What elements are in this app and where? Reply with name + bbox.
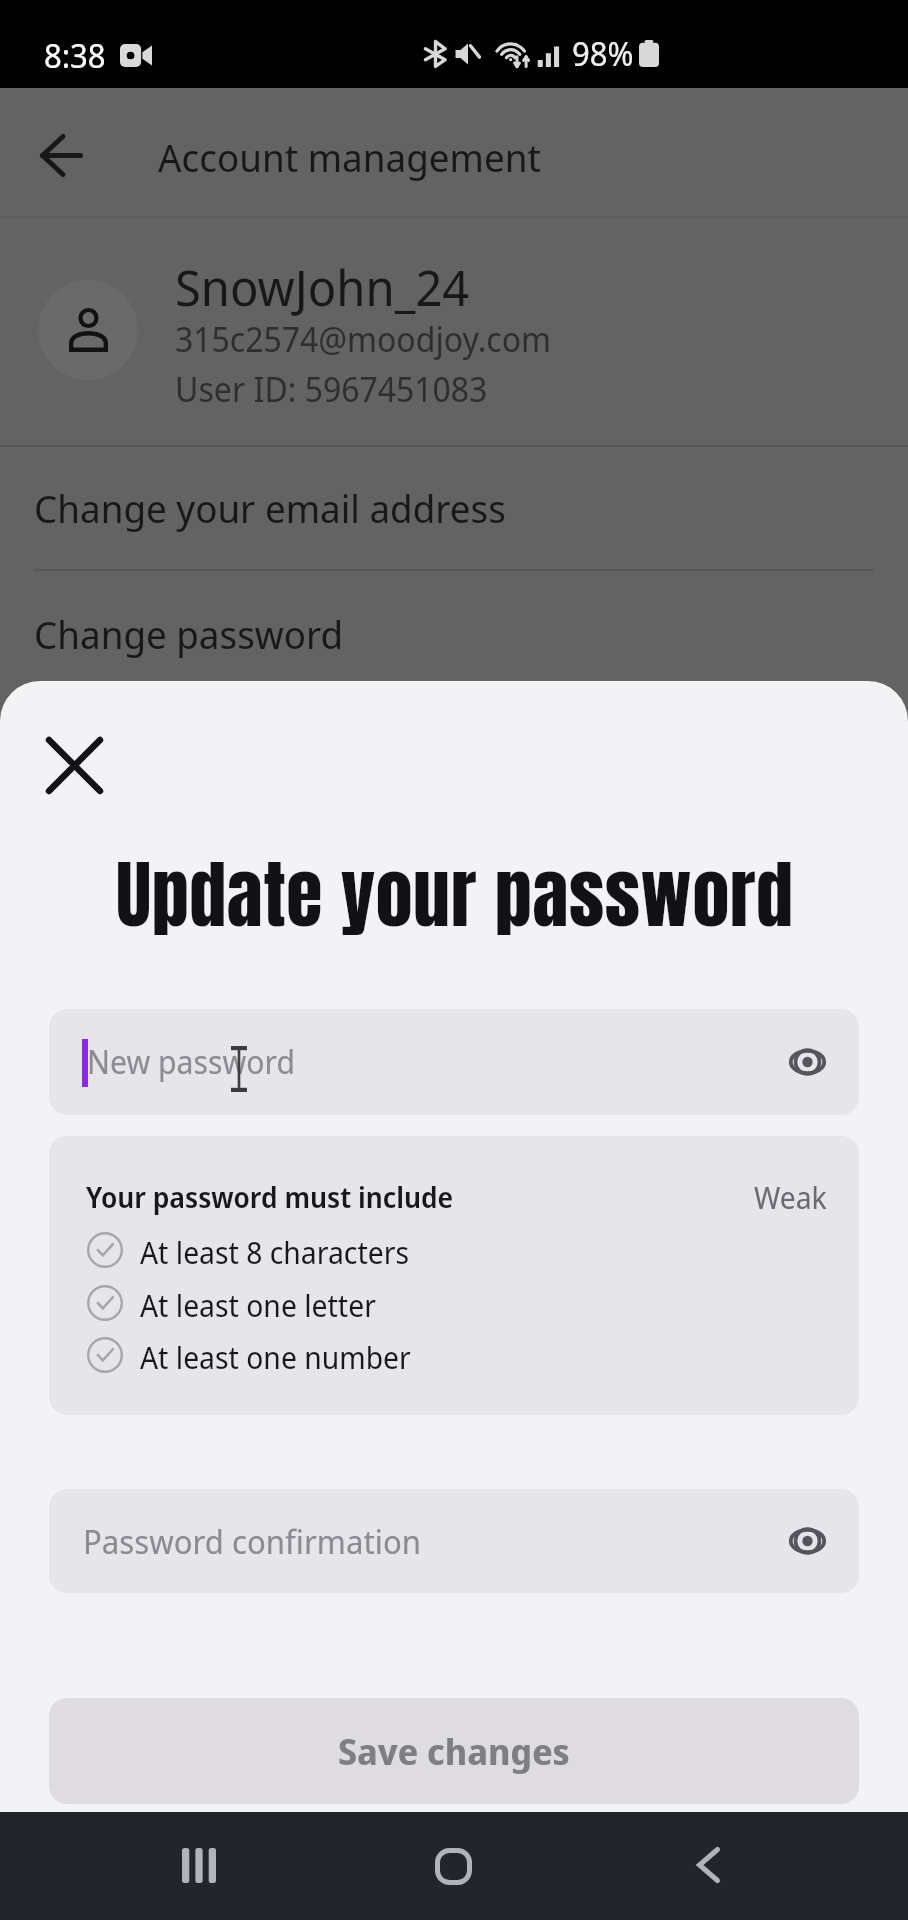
staticText: New password (87, 1040, 295, 1084)
staticText: 98% (572, 31, 634, 76)
staticText: At least one number (140, 1337, 411, 1373)
staticText: 315c2574@moodjoy.com (175, 316, 552, 362)
staticText: Update your password (116, 839, 794, 950)
staticText: At least 8 characters (140, 1232, 410, 1268)
staticText: Change your email address (34, 481, 506, 534)
staticText: Save changes (338, 1727, 570, 1776)
staticText: Weak (754, 1177, 827, 1218)
staticText: Account management (158, 130, 541, 183)
button[interactable]: Recent apps (151, 1817, 247, 1913)
staticText: Your password must include (86, 1178, 454, 1216)
button[interactable]: Password confirmation (49, 1489, 859, 1593)
button[interactable]: Back (29, 123, 93, 187)
staticText: At least one letter (140, 1285, 376, 1321)
staticText: Change password (34, 607, 344, 660)
staticText: 8:38 (44, 33, 106, 78)
button[interactable]: Change password (0, 571, 908, 695)
button[interactable]: Change your email address (0, 445, 908, 569)
button[interactable]: New password (49, 1009, 859, 1115)
button[interactable]: Show password (780, 1035, 834, 1089)
button[interactable]: Save changes (49, 1698, 859, 1804)
button[interactable]: Close (34, 725, 114, 805)
button[interactable]: Show password (780, 1514, 834, 1568)
staticText: Password confirmation (83, 1519, 422, 1564)
button[interactable]: Back (660, 1817, 756, 1913)
button[interactable]: Home (405, 1818, 501, 1914)
staticText: SnowJohn_24 (175, 253, 470, 321)
staticText: User ID: 5967451083 (175, 366, 488, 412)
